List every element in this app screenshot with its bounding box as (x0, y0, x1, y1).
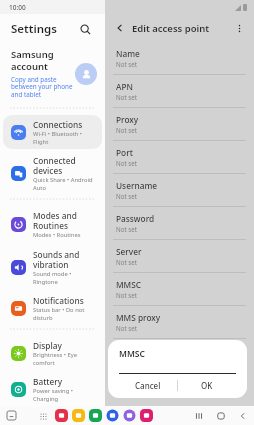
staticText: Not set (116, 60, 137, 68)
button[interactable]: App (55, 409, 68, 422)
staticText: Edit access point (132, 22, 210, 35)
staticText: Username (116, 180, 157, 191)
staticText: OK (201, 380, 213, 391)
button[interactable]: App (89, 409, 102, 422)
button[interactable]: MMSC (105, 273, 254, 305)
staticText: Modes and Routines (33, 210, 96, 231)
button[interactable]: Proxy (105, 108, 254, 140)
staticText: Not set (116, 93, 137, 101)
staticText: Not set (116, 258, 137, 266)
button[interactable]: APN (105, 75, 254, 107)
staticText: Settings (11, 21, 57, 37)
button[interactable]: Modes and Routines (3, 206, 102, 243)
button[interactable]: App (106, 409, 119, 422)
staticText: Status bar • Do not disturb (33, 306, 96, 321)
button[interactable]: Search (76, 20, 94, 38)
button[interactable]: Name (105, 42, 254, 74)
staticText: Proxy (116, 114, 139, 125)
staticText: Sound mode • Ringtone (33, 270, 96, 285)
button[interactable]: App (140, 409, 153, 422)
button[interactable]: OK (178, 374, 236, 396)
button[interactable]: MMS proxy (105, 306, 254, 338)
button[interactable]: App (123, 409, 136, 422)
staticText: Not set (116, 225, 137, 233)
staticText: MMSC (116, 279, 142, 290)
staticText: Not set (116, 291, 137, 299)
staticText: Samsung account (11, 48, 54, 73)
staticText: Server (116, 246, 142, 257)
button[interactable]: Server (105, 240, 254, 272)
staticText: Wi-Fi • Bluetooth • Flight mode (33, 130, 96, 145)
button[interactable]: Wallpaper and style (3, 417, 102, 424)
button[interactable]: More options (231, 20, 247, 36)
button[interactable]: Sounds and vibration (3, 245, 102, 289)
staticText: Not set (116, 324, 137, 332)
staticText: APN (116, 81, 133, 92)
button[interactable]: Home (210, 406, 232, 425)
staticText: Name (116, 48, 140, 59)
button[interactable]: Display (3, 336, 102, 370)
staticText: Not set (116, 192, 137, 200)
staticText: Connected devices (33, 155, 96, 176)
button[interactable]: Connections (3, 115, 102, 149)
button[interactable]: Recents (188, 406, 210, 425)
staticText: MMS proxy (116, 312, 161, 323)
button[interactable]: Cancel (119, 374, 177, 396)
button[interactable]: Samsung account (0, 44, 105, 105)
button[interactable]: App (72, 409, 85, 422)
button[interactable]: Recents panel (0, 406, 22, 425)
staticText: Display (33, 340, 62, 351)
staticText: Connections (33, 119, 83, 130)
button[interactable]: Back (112, 20, 128, 36)
button[interactable]: Username (105, 174, 254, 206)
staticText: Quick Share • Android Auto (33, 176, 96, 191)
staticText: Cancel (135, 380, 161, 391)
staticText: Port (116, 147, 133, 158)
staticText: Notifications (33, 295, 84, 306)
staticText: Battery (33, 376, 63, 387)
button[interactable]: Back (232, 406, 254, 425)
staticText: Not set (116, 159, 137, 167)
staticText: Brightness • Eye comfort shield • Naviga… (33, 351, 96, 366)
staticText: Power saving • Charging (33, 387, 96, 402)
button[interactable]: Apps (36, 409, 50, 423)
staticText: Copy and paste between your phone and ta… (11, 75, 73, 99)
staticText: MMSC (119, 348, 145, 360)
staticText: Not set (116, 126, 137, 134)
staticText: Password (116, 213, 155, 224)
button[interactable]: Password (105, 207, 254, 239)
button[interactable]: Port (105, 141, 254, 173)
staticText: 10:00 (9, 3, 26, 12)
button[interactable]: Connected devices (3, 151, 102, 195)
staticText: Sounds and vibration (33, 249, 80, 270)
staticText: Modes • Routines (33, 231, 81, 239)
staticText: MMS port (116, 345, 155, 356)
button[interactable]: MMS port (105, 339, 254, 371)
button[interactable]: Notifications (3, 291, 102, 325)
button[interactable]: Battery (3, 372, 102, 406)
